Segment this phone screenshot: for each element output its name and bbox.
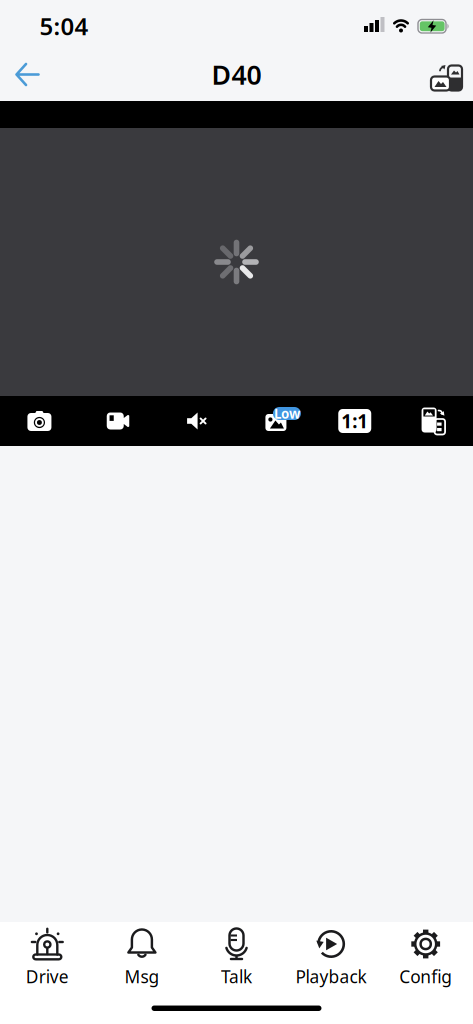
button[interactable]: Playback: [284, 928, 378, 988]
button[interactable]: Talk: [189, 928, 284, 988]
staticText: Low: [274, 405, 300, 422]
staticText: Playback: [296, 965, 367, 988]
staticText: Msg: [124, 965, 159, 988]
button[interactable]: Rotate screen: [394, 396, 473, 446]
button[interactable]: Config: [378, 928, 473, 988]
button[interactable]: Multi view: [431, 55, 463, 93]
staticText: Talk: [221, 965, 252, 988]
button[interactable]: Drive: [0, 928, 95, 988]
button[interactable]: Back: [12, 59, 52, 89]
button[interactable]: Video quality: [236, 396, 315, 446]
staticText: 1:1: [341, 409, 368, 433]
button[interactable]: Aspect ratio: [315, 396, 394, 446]
button[interactable]: Snapshot: [0, 396, 79, 446]
staticText: Drive: [26, 965, 69, 988]
button[interactable]: Mute: [158, 396, 236, 446]
staticText: 5:04: [39, 10, 88, 42]
button[interactable]: Record: [79, 396, 158, 446]
button[interactable]: Msg: [95, 928, 189, 988]
staticText: Config: [399, 965, 452, 988]
staticText: D40: [211, 57, 261, 92]
